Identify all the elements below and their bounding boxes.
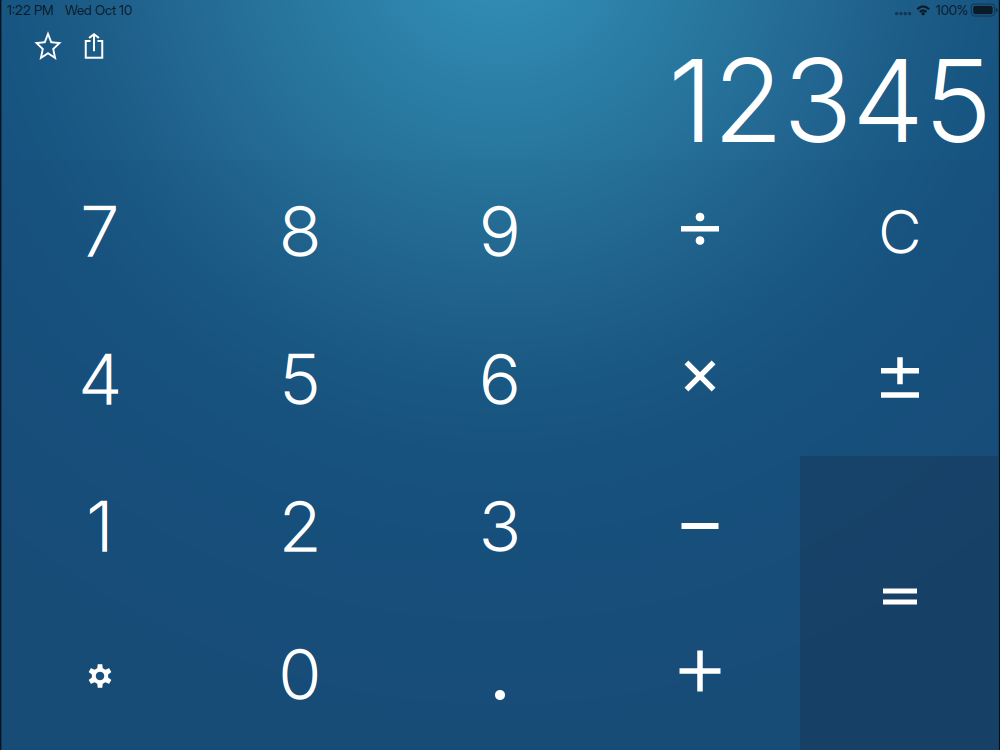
button[interactable]: Add — [600, 597, 800, 745]
staticText: C — [878, 196, 922, 268]
button[interactable]: 0 — [200, 600, 400, 748]
staticText: 2 — [278, 483, 321, 569]
button[interactable]: Divide — [600, 155, 800, 303]
staticText: 12345 — [668, 31, 992, 170]
button[interactable]: 3 — [400, 452, 600, 600]
button[interactable]: Multiply — [600, 302, 800, 450]
staticText: 5 — [279, 336, 321, 422]
staticText: 9 — [478, 188, 521, 274]
button[interactable]: Favourite — [26, 24, 70, 68]
button[interactable]: 2 — [200, 452, 400, 600]
staticText: 8 — [278, 188, 321, 274]
button[interactable]: 4 — [0, 305, 200, 453]
staticText: 3 — [478, 483, 521, 569]
staticText: 0 — [278, 631, 322, 717]
button[interactable]: 9 — [400, 157, 600, 305]
button[interactable]: Decimal point — [400, 600, 600, 748]
button[interactable]: Subtract — [600, 452, 800, 600]
staticText: 7 — [80, 188, 120, 274]
staticText: 6 — [478, 336, 521, 422]
button[interactable]: Settings — [0, 602, 200, 750]
button[interactable]: Equals — [800, 449, 1000, 743]
button[interactable]: Plus or minus — [800, 304, 1000, 451]
button[interactable]: 8 — [200, 157, 400, 305]
button[interactable]: Clear — [800, 158, 1000, 306]
staticText: 4 — [78, 336, 122, 422]
button[interactable]: 1 — [0, 452, 200, 600]
staticText: 1 — [86, 483, 114, 569]
staticText: 1:22 PM — [7, 2, 54, 18]
button[interactable]: 6 — [400, 305, 600, 453]
staticText: Wed Oct 10 — [65, 2, 132, 18]
staticText: 100% — [936, 2, 968, 18]
button[interactable]: 5 — [200, 305, 400, 453]
button[interactable]: 7 — [0, 157, 200, 305]
button[interactable]: Share — [70, 24, 114, 68]
